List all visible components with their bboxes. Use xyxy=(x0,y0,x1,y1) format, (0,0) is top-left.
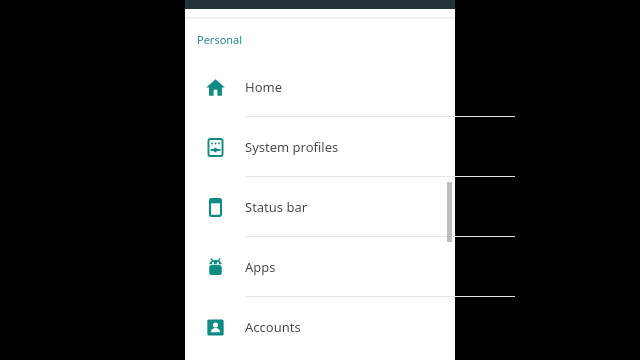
staticText: System profiles xyxy=(245,138,339,156)
staticText: Status bar xyxy=(245,198,308,216)
staticText: Home xyxy=(245,78,282,96)
button[interactable]: Accounts xyxy=(185,297,455,357)
button[interactable]: System profiles xyxy=(185,117,455,177)
staticText: Apps xyxy=(245,258,276,276)
button[interactable]: Apps xyxy=(185,237,455,297)
button[interactable]: Home xyxy=(185,57,455,117)
staticText: Accounts xyxy=(245,318,301,336)
button[interactable]: Status bar xyxy=(185,177,455,237)
staticText: Personal xyxy=(197,32,243,47)
